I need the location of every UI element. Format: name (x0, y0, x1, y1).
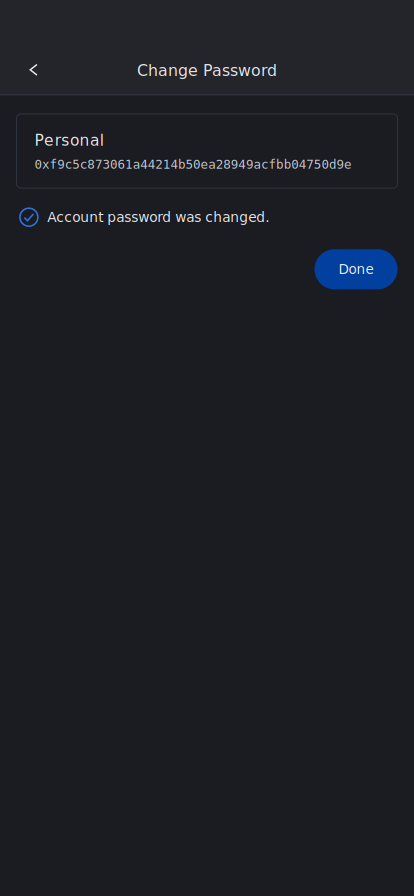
staticText: Account password was changed. (47, 209, 269, 225)
staticText: Change Password (137, 61, 277, 80)
button[interactable]: Done (314, 249, 397, 289)
button[interactable]: Back (12, 48, 56, 92)
staticText: 0xf9c5c873061a44214b50ea28949acfbb04750d… (34, 157, 352, 172)
staticText: Done (338, 261, 373, 277)
staticText: Personal (34, 131, 104, 149)
